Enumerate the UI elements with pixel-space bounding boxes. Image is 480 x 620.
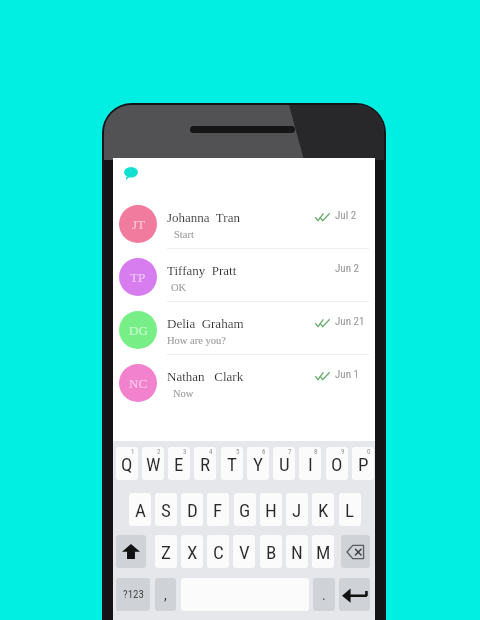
staticText: Jul 2 xyxy=(335,209,357,222)
staticText: 9 xyxy=(341,448,345,456)
staticText: OK xyxy=(171,282,187,294)
staticText: , xyxy=(164,587,167,603)
button[interactable]: Enter xyxy=(339,578,370,611)
staticText: R xyxy=(200,453,211,475)
staticText: Now xyxy=(173,388,194,400)
staticText: . xyxy=(322,587,326,603)
staticText: NC xyxy=(129,376,148,390)
button[interactable]: N xyxy=(286,535,308,568)
staticText: Jun 21 xyxy=(335,315,365,328)
staticText: 1 xyxy=(131,448,135,456)
staticText: Start xyxy=(174,229,194,241)
button[interactable]: B xyxy=(260,535,282,568)
button[interactable]: T xyxy=(221,447,243,480)
staticText: J xyxy=(292,499,302,521)
staticText: 2 xyxy=(157,448,161,456)
staticText: B xyxy=(266,541,277,563)
button[interactable]: . xyxy=(313,578,335,611)
button[interactable]: K xyxy=(312,493,334,526)
button[interactable]: ?123 xyxy=(116,578,150,611)
staticText: Jun 2 xyxy=(335,262,359,275)
staticText: W xyxy=(146,453,161,475)
button[interactable]: JT xyxy=(113,198,375,250)
button[interactable]: A xyxy=(129,493,151,526)
button[interactable]: Backspace xyxy=(341,535,370,568)
staticText: Tiffany Pratt xyxy=(167,263,237,277)
staticText: G xyxy=(239,499,251,521)
staticText: D xyxy=(187,499,198,521)
button[interactable]: G xyxy=(234,493,256,526)
staticText: P xyxy=(358,453,369,475)
staticText: How are you? xyxy=(167,335,226,347)
button[interactable]: J xyxy=(286,493,308,526)
staticText: 5 xyxy=(236,448,240,456)
staticText: 6 xyxy=(262,448,266,456)
button[interactable]: DG xyxy=(113,304,375,356)
button[interactable]: Z xyxy=(155,535,177,568)
button[interactable]: TP xyxy=(113,251,375,303)
button[interactable]: W xyxy=(142,447,164,480)
staticText: Nathan Clark xyxy=(167,369,244,383)
button[interactable]: C xyxy=(207,535,229,568)
staticText: L xyxy=(345,499,355,521)
staticText: 7 xyxy=(288,448,292,456)
button[interactable]: Y xyxy=(247,447,269,480)
staticText: 3 xyxy=(183,448,187,456)
staticText: A xyxy=(135,499,146,521)
staticText: Johanna Tran xyxy=(167,210,240,224)
staticText: DG xyxy=(129,323,148,337)
button[interactable]: X xyxy=(181,535,203,568)
button[interactable]: NC xyxy=(113,357,375,409)
button[interactable]: M xyxy=(312,535,334,568)
staticText: TP xyxy=(130,270,146,284)
button[interactable]: , xyxy=(155,578,176,611)
staticText: Z xyxy=(161,541,171,563)
button[interactable]: S xyxy=(155,493,177,526)
staticText: E xyxy=(174,453,184,475)
staticText: M xyxy=(316,541,331,563)
button[interactable]: Shift xyxy=(116,535,146,568)
staticText: 0 xyxy=(367,448,371,456)
staticText: 8 xyxy=(314,448,318,456)
staticText: F xyxy=(213,499,223,521)
staticText: Q xyxy=(121,453,133,475)
staticText: ?123 xyxy=(123,588,144,601)
button[interactable]: I xyxy=(299,447,321,480)
button[interactable]: H xyxy=(260,493,282,526)
staticText: X xyxy=(187,541,198,563)
staticText: T xyxy=(227,453,237,475)
staticText: N xyxy=(291,541,303,563)
button[interactable]: E xyxy=(168,447,190,480)
button[interactable]: U xyxy=(273,447,295,480)
staticText: 4 xyxy=(209,448,213,456)
button[interactable]: F xyxy=(207,493,229,526)
button[interactable]: Q xyxy=(116,447,138,480)
staticText: Y xyxy=(253,453,263,475)
staticText: S xyxy=(161,499,171,521)
button[interactable]: Messages xyxy=(124,167,138,180)
staticText: JT xyxy=(132,217,145,231)
staticText: I xyxy=(308,453,313,475)
staticText: H xyxy=(265,499,277,521)
staticText: Delia Graham xyxy=(167,316,244,330)
button[interactable]: V xyxy=(233,535,255,568)
button[interactable]: O xyxy=(326,447,348,480)
button[interactable]: P xyxy=(352,447,374,480)
staticText: Jun 1 xyxy=(335,368,359,381)
button[interactable]: D xyxy=(181,493,203,526)
staticText: U xyxy=(279,453,290,475)
button[interactable]: R xyxy=(194,447,216,480)
staticText: V xyxy=(239,541,250,563)
staticText: C xyxy=(213,541,224,563)
button[interactable]: L xyxy=(339,493,361,526)
staticText: K xyxy=(318,499,329,521)
staticText: O xyxy=(331,453,343,475)
